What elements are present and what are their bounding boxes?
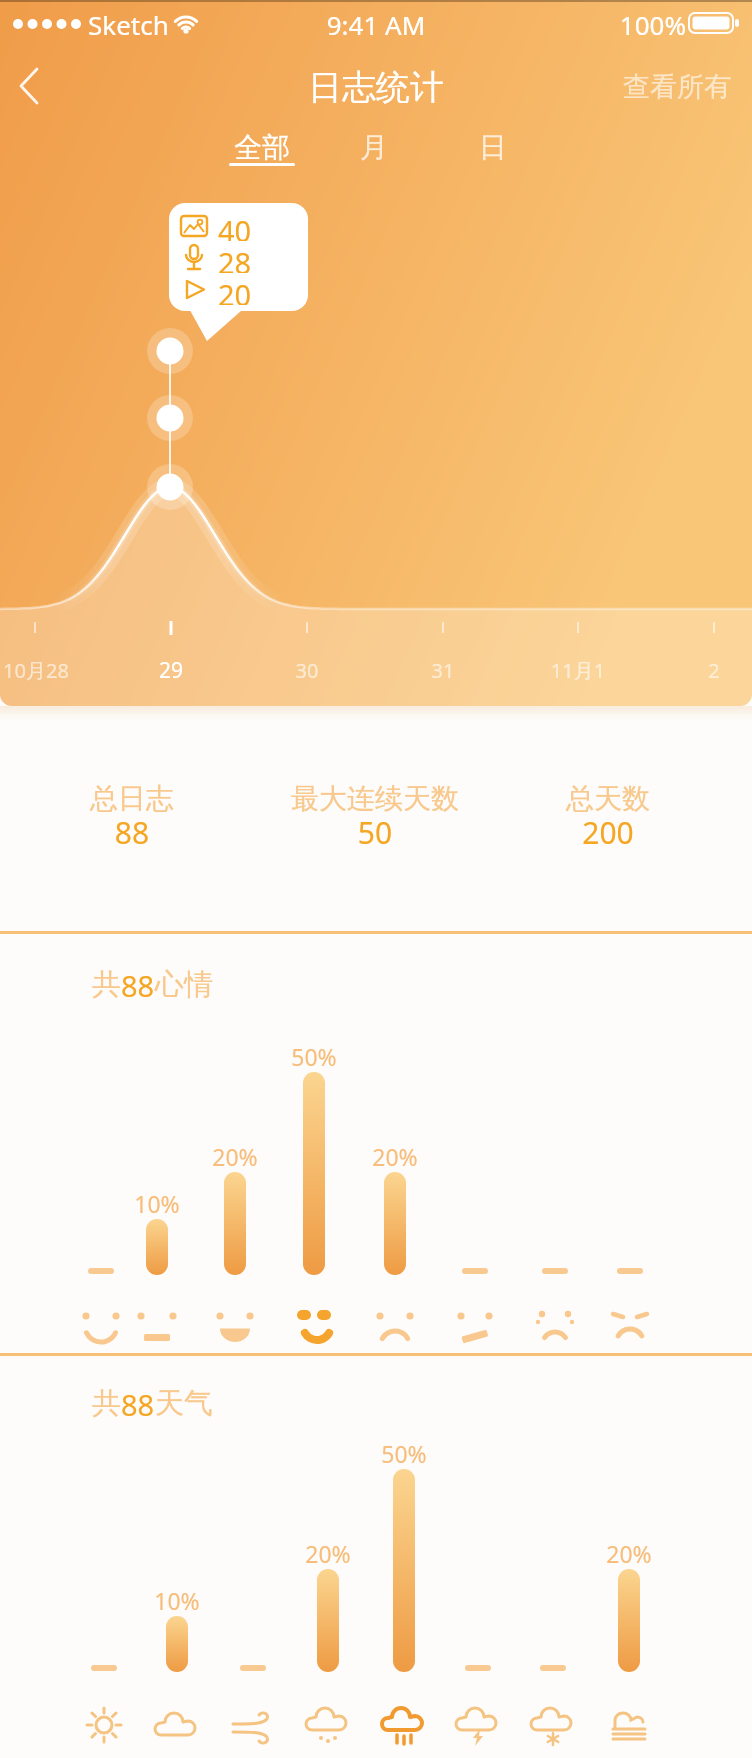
staticText: 天气 [155,1385,213,1422]
button[interactable]: 月 [334,124,414,170]
button[interactable]: 日 [453,124,533,170]
staticText: 心情 [155,966,213,1003]
staticText: 20% [355,1141,435,1172]
staticText: 28 [218,243,252,273]
staticText: 共 [92,1385,121,1422]
button[interactable]: 40 [169,203,308,311]
staticText: 50 [255,812,495,853]
staticText: 88 [121,1385,155,1424]
staticText: 100% [598,7,686,42]
staticText: 全部 [234,130,290,165]
staticText: 10% [137,1585,217,1616]
staticText: 11月1 [518,657,638,684]
staticText: 10月28 [0,657,96,684]
staticText: 20% [195,1141,275,1172]
staticText: 31 [383,657,503,684]
staticText: 9:41 AM [296,7,456,42]
staticText: 日 [479,130,507,165]
staticText: 20% [288,1538,368,1569]
staticText: 40 [218,211,252,241]
button[interactable]: 全部 [222,124,302,170]
staticText: 10% [117,1188,197,1219]
button[interactable] [6,56,66,116]
staticText: 88 [121,966,155,1005]
staticText: 总日志 [12,781,252,816]
staticText: 50% [274,1041,354,1072]
staticText: 总天数 [488,781,728,816]
staticText: 88 [12,812,252,853]
staticText: 20 [218,275,252,305]
staticText: 30 [247,657,367,684]
staticText: 20% [589,1538,669,1569]
staticText: 200 [488,812,728,853]
staticText: 2 [654,657,752,684]
staticText: 月 [360,130,388,165]
staticText: 日志统计 [256,66,496,109]
staticText: 共 [92,966,121,1003]
staticText: 50% [364,1438,444,1469]
button[interactable]: 查看所有 [612,64,742,110]
staticText: 最大连续天数 [255,781,495,816]
staticText: 29 [111,656,231,685]
staticText: 查看所有 [623,70,731,104]
staticText: Sketch [88,7,188,42]
